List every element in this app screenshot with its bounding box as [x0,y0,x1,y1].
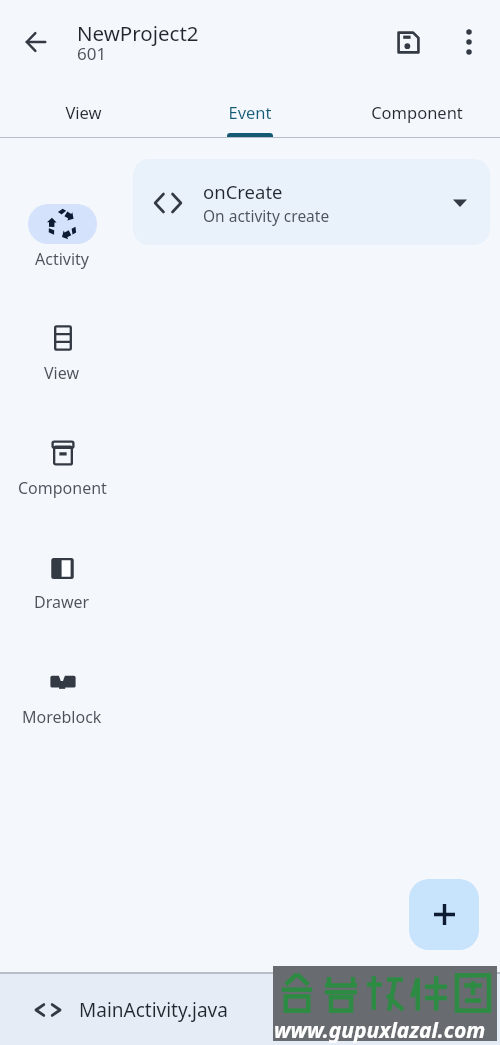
button[interactable]: More options [447,20,491,64]
button[interactable]: Component [12,433,112,499]
button[interactable]: View [12,318,112,384]
button[interactable]: Expand [440,183,480,223]
button[interactable]: Save [386,20,430,64]
button[interactable]: Add [409,879,479,950]
button[interactable]: Drawer [12,547,112,613]
button[interactable]: MainActivity.java [0,974,500,1045]
staticText: MainActivity.java [79,997,228,1023]
staticText: 601 [77,42,107,65]
button[interactable]: Back [14,20,58,64]
staticText: Component [371,101,463,123]
staticText: View [65,101,102,123]
staticText: View [44,362,80,384]
button[interactable]: Moreblock [12,662,112,728]
button[interactable]: onCreate [133,159,490,245]
staticText: Moreblock [22,706,102,728]
staticText: onCreate [203,179,283,204]
staticText: Component [18,477,107,499]
button[interactable]: View [0,84,166,138]
button[interactable]: Activity [12,204,112,270]
staticText: www.gupuxlazal.com [274,1016,486,1045]
button[interactable]: Event [166,84,333,138]
staticText: On activity create [203,205,330,226]
staticText: Activity [35,248,90,270]
staticText: NewProject2 [77,19,199,47]
staticText: Event [228,101,272,123]
button[interactable]: Component [333,84,500,138]
staticText: Drawer [34,591,90,613]
